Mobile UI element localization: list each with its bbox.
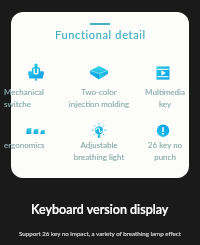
- button[interactable]: Mechanical switche: [4, 64, 70, 113]
- staticText: Support 26 key no impact, a variety of b…: [19, 230, 181, 237]
- button[interactable]: 26 key no punch: [132, 122, 198, 166]
- button[interactable]: Adjustable breathing light: [66, 122, 132, 166]
- staticText: Keyboard version display: [31, 202, 169, 217]
- staticText: Functional detail: [55, 28, 146, 41]
- staticText: ergonomics: [4, 140, 70, 150]
- button[interactable]: Multimedia key: [132, 64, 198, 113]
- staticText: 26 key no punch: [132, 140, 198, 162]
- button[interactable]: Two-color injection molding: [66, 64, 132, 113]
- staticText: Mechanical switche: [4, 87, 70, 109]
- button[interactable]: ergonomics: [4, 122, 70, 166]
- staticText: Two-color injection molding: [66, 87, 132, 109]
- staticText: Multimedia key: [132, 87, 198, 109]
- staticText: Adjustable breathing light: [66, 140, 132, 162]
